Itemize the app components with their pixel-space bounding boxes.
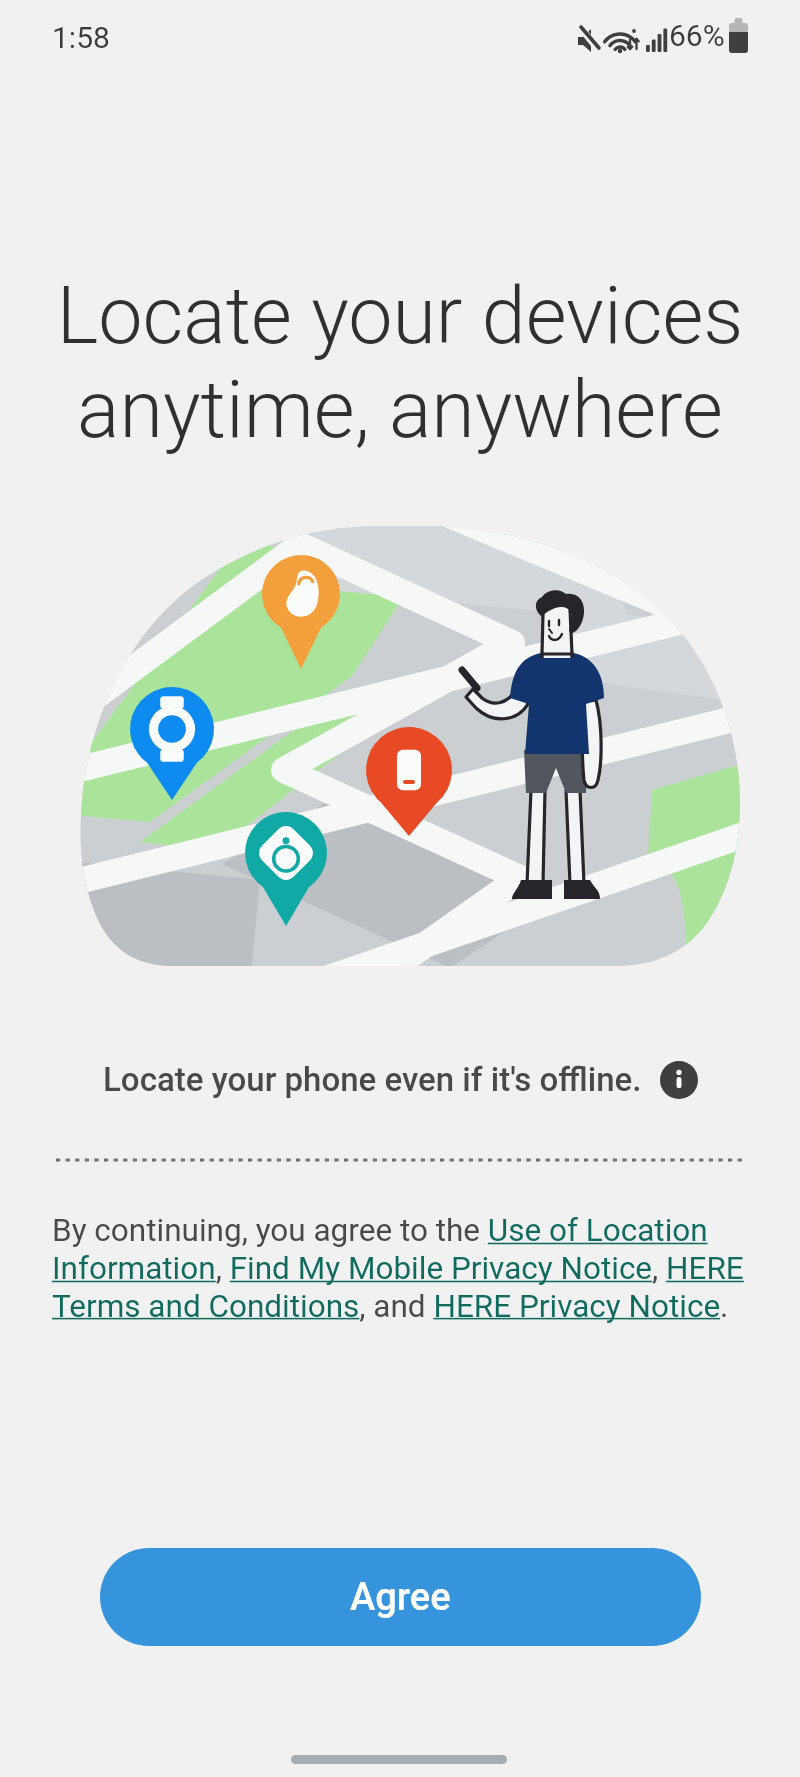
button[interactable]: Agree [100, 1548, 701, 1646]
staticText: Agree [350, 1575, 451, 1620]
staticText: Locate your devices anytime, anywhere [0, 270, 800, 457]
staticText: By continuing, you agree to the Use of L… [52, 1212, 752, 1324]
staticText: 66% [669, 18, 725, 53]
staticText: 1:58 [52, 20, 110, 55]
staticText: Locate your phone even if it's offline. [103, 1060, 642, 1099]
button[interactable]: More information [660, 1061, 698, 1099]
